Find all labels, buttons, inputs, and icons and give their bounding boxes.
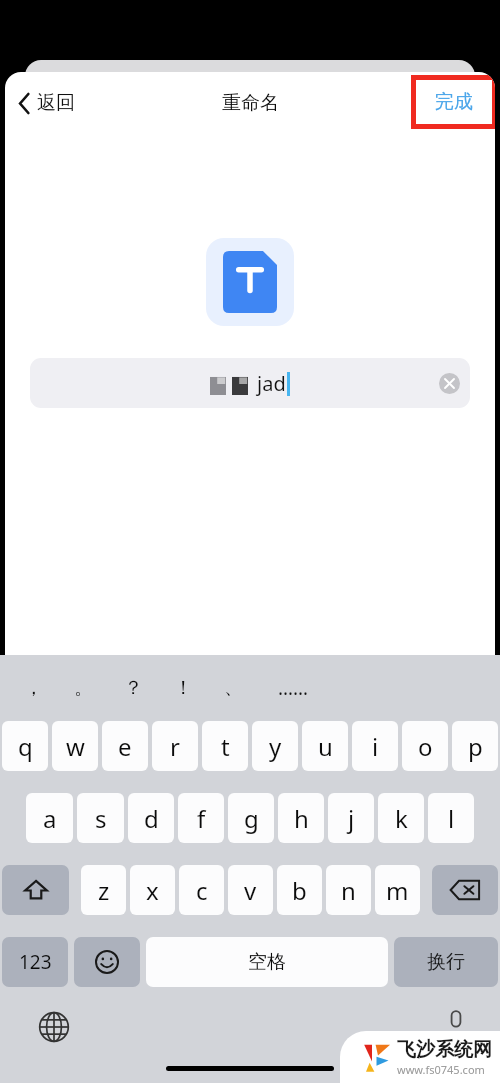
button[interactable]: j bbox=[328, 793, 374, 843]
button[interactable]: n bbox=[326, 865, 371, 915]
button[interactable]: g bbox=[228, 793, 274, 843]
staticText: z bbox=[98, 874, 110, 907]
button[interactable]: t bbox=[202, 721, 248, 771]
staticText: 。 bbox=[74, 676, 93, 700]
staticText: c bbox=[196, 874, 208, 907]
staticText: 返回 bbox=[37, 91, 75, 115]
staticText: j bbox=[348, 802, 355, 835]
button[interactable]: 。 bbox=[58, 666, 108, 710]
staticText: t bbox=[221, 730, 230, 763]
staticText: jad bbox=[257, 370, 286, 397]
button[interactable] bbox=[206, 238, 294, 326]
staticText: y bbox=[269, 730, 282, 763]
button[interactable]: Emoji bbox=[74, 937, 140, 987]
staticText: r bbox=[170, 730, 180, 763]
button[interactable]: a bbox=[26, 793, 73, 843]
staticText: ！ bbox=[174, 676, 193, 700]
button[interactable]: Shift bbox=[2, 865, 69, 915]
staticText: …… bbox=[278, 675, 309, 701]
staticText: a bbox=[43, 802, 57, 835]
button[interactable]: z bbox=[81, 865, 126, 915]
staticText: x bbox=[146, 874, 159, 907]
button[interactable]: v bbox=[228, 865, 273, 915]
staticText: v bbox=[244, 874, 257, 907]
button[interactable]: k bbox=[378, 793, 424, 843]
button[interactable]: 、 bbox=[208, 666, 258, 710]
staticText: k bbox=[395, 802, 408, 835]
button[interactable]: ！ bbox=[158, 666, 208, 710]
button[interactable]: w bbox=[52, 721, 98, 771]
button[interactable]: ， bbox=[8, 666, 58, 710]
button[interactable]: u bbox=[302, 721, 348, 771]
button[interactable]: 换行 bbox=[394, 937, 498, 987]
button[interactable]: ？ bbox=[108, 666, 158, 710]
button[interactable]: x bbox=[130, 865, 175, 915]
button[interactable]: h bbox=[278, 793, 324, 843]
button[interactable]: o bbox=[402, 721, 448, 771]
staticText: 空格 bbox=[248, 950, 286, 974]
button[interactable]: s bbox=[77, 793, 124, 843]
button[interactable]: c bbox=[179, 865, 224, 915]
staticText: s bbox=[95, 802, 107, 835]
button[interactable]: i bbox=[352, 721, 398, 771]
button[interactable]: Clear text bbox=[439, 373, 460, 394]
staticText: d bbox=[144, 802, 159, 835]
button[interactable]: m bbox=[375, 865, 420, 915]
button[interactable]: e bbox=[102, 721, 148, 771]
button[interactable]: 123 bbox=[2, 937, 68, 987]
staticText: m bbox=[386, 874, 409, 907]
button[interactable]: p bbox=[452, 721, 498, 771]
staticText: i bbox=[372, 730, 379, 763]
staticText: o bbox=[418, 730, 433, 763]
staticText: q bbox=[18, 730, 33, 763]
staticText: w bbox=[66, 730, 85, 763]
staticText: g bbox=[244, 802, 259, 835]
staticText: f bbox=[197, 802, 206, 835]
button[interactable]: l bbox=[428, 793, 474, 843]
button[interactable]: r bbox=[152, 721, 198, 771]
staticText: 换行 bbox=[427, 950, 465, 974]
button[interactable]: Change keyboard language bbox=[32, 1005, 76, 1049]
button[interactable]: 空格 bbox=[146, 937, 388, 987]
button[interactable]: 完成 bbox=[416, 80, 492, 124]
staticText: n bbox=[341, 874, 356, 907]
staticText: 123 bbox=[19, 949, 52, 975]
button[interactable]: f bbox=[178, 793, 224, 843]
button[interactable]: y bbox=[252, 721, 298, 771]
button[interactable]: 返回 bbox=[13, 85, 81, 121]
button[interactable]: Voice input bbox=[436, 1003, 476, 1043]
staticText: b bbox=[292, 874, 307, 907]
staticText: 完成 bbox=[435, 90, 473, 114]
staticText: 、 bbox=[224, 676, 243, 700]
staticText: l bbox=[448, 802, 455, 835]
button[interactable]: d bbox=[128, 793, 174, 843]
button[interactable]: q bbox=[2, 721, 48, 771]
staticText: h bbox=[294, 802, 309, 835]
button[interactable]: jad bbox=[30, 358, 470, 408]
staticText: ， bbox=[24, 676, 43, 700]
staticText: e bbox=[118, 730, 132, 763]
staticText: u bbox=[318, 730, 333, 763]
staticText: p bbox=[468, 730, 483, 763]
staticText: ？ bbox=[124, 676, 143, 700]
button[interactable]: b bbox=[277, 865, 322, 915]
staticText: 飞沙系统网 bbox=[397, 1038, 492, 1062]
staticText: 重命名 bbox=[222, 91, 279, 115]
button[interactable]: …… bbox=[258, 666, 328, 710]
button[interactable]: Backspace bbox=[432, 865, 498, 915]
staticText: www.fs0745.com bbox=[397, 1062, 485, 1077]
